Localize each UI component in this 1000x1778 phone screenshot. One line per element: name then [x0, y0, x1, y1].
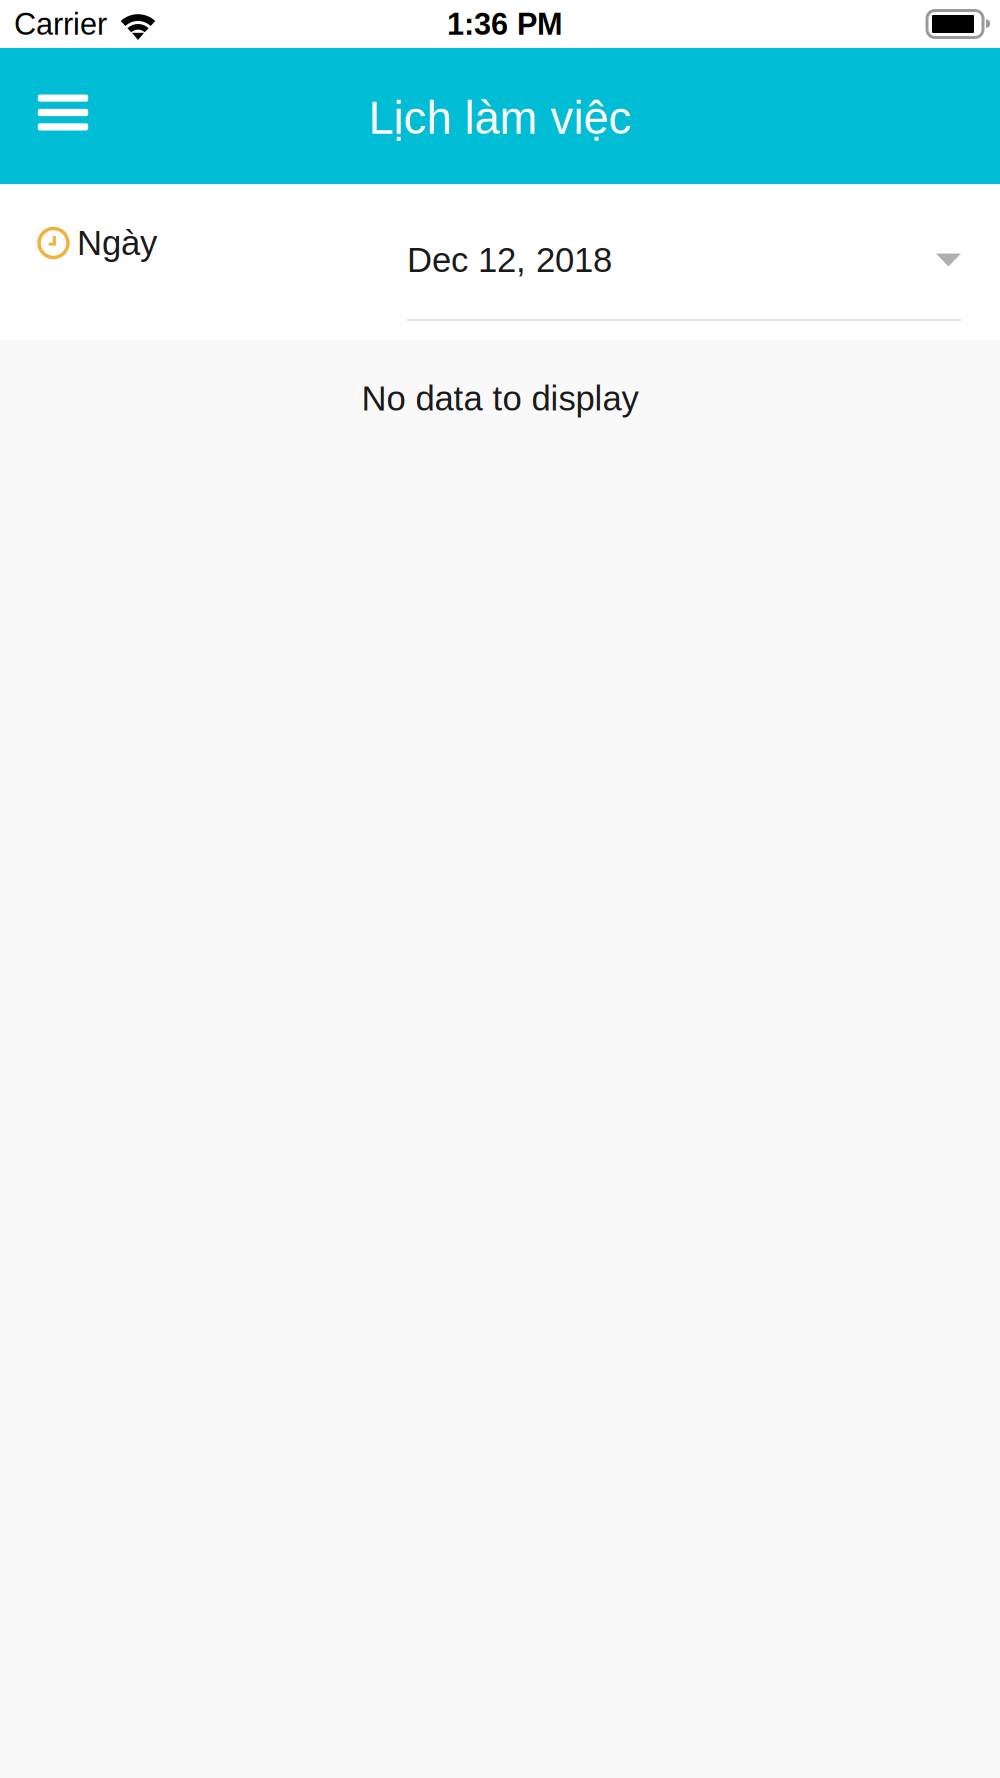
button[interactable]: Menu: [19, 65, 107, 159]
staticText: No data to display: [361, 379, 638, 418]
staticText: Ngày: [77, 224, 157, 262]
staticText: 1:36 PM: [447, 7, 563, 41]
button[interactable]: Dec 12, 2018: [407, 203, 961, 321]
staticText: Lịch làm việc: [368, 93, 631, 143]
staticText: Carrier: [14, 7, 107, 41]
staticText: Dec 12, 2018: [407, 241, 612, 279]
